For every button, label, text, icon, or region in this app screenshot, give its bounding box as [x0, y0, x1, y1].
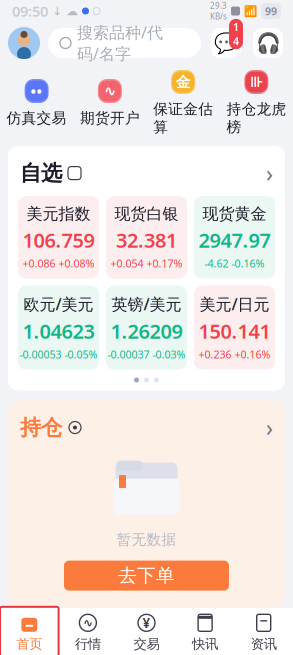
button[interactable]: 编辑自选 — [68, 167, 81, 180]
staticText: 29.3 KB/s — [210, 0, 227, 22]
button[interactable]: 客服 — [251, 26, 285, 60]
button[interactable]: 查看持仓详情 — [266, 412, 273, 443]
staticText: •• — [31, 81, 43, 101]
button[interactable]: 更多自选 — [266, 158, 273, 188]
staticText: ¥ — [142, 614, 150, 632]
staticText: 快讯 — [192, 636, 218, 652]
button[interactable]: 消息 — [209, 26, 243, 60]
staticText: 行情 — [75, 636, 101, 652]
button[interactable]: 去下单 — [64, 561, 229, 591]
staticText: 现货白银 — [114, 204, 178, 224]
button[interactable]: ⊪ — [220, 68, 293, 136]
staticText: 💬 — [213, 32, 238, 54]
staticText: +0.17% — [146, 256, 182, 270]
staticText: 150.141 — [198, 318, 270, 344]
button[interactable]: 快讯 — [176, 607, 234, 655]
staticText: 1.26209 — [110, 318, 182, 344]
button[interactable]: 现货黄金 — [194, 196, 275, 278]
staticText: ∿ — [83, 616, 93, 630]
button[interactable]: 查看持仓多空比 — [266, 629, 273, 655]
button[interactable]: 美元/日元 — [194, 285, 275, 369]
staticText: 持仓多空比 — [20, 632, 120, 655]
staticText: 保证金估算 — [153, 100, 213, 136]
staticText: ∿ — [104, 83, 116, 99]
staticText: ⊪ — [250, 74, 263, 90]
staticText: -4.62 — [204, 256, 228, 270]
staticText: -0.05% — [64, 347, 97, 361]
staticText: 去下单 — [118, 564, 175, 587]
button[interactable]: ¥ — [117, 607, 176, 655]
staticText: 交易 — [133, 636, 159, 652]
staticText: 暂无数据 — [116, 531, 176, 549]
staticText: 英镑/美元 — [111, 293, 181, 315]
staticText: 2947.97 — [198, 227, 270, 253]
button[interactable]: 欧元/美元 — [18, 285, 99, 369]
staticText: 📶 — [244, 5, 257, 17]
staticText: 持仓 — [20, 414, 62, 441]
staticText: -0.16% — [231, 256, 264, 270]
staticText: 14 — [233, 20, 239, 48]
staticText: ↓ — [52, 4, 62, 18]
button[interactable]: 个人中心 — [8, 27, 40, 59]
button[interactable]: 显示或隐藏持仓金额 — [68, 420, 82, 434]
staticText: 欧元/美元 — [23, 293, 93, 315]
button[interactable]: ∿ — [73, 77, 146, 127]
staticText: 仿真交易 — [7, 109, 67, 127]
staticText: 自选 — [20, 160, 62, 186]
staticText: › — [266, 412, 273, 443]
staticText: 1.04623 — [22, 318, 94, 344]
button[interactable]: 现货白银 — [106, 196, 187, 278]
staticText: +0.16% — [234, 347, 270, 361]
staticText: +0.086 — [22, 256, 55, 270]
staticText: 金 — [176, 73, 191, 91]
staticText: +0.054 — [110, 256, 143, 270]
staticText: -0.00037 — [107, 347, 149, 361]
staticText: -0.03% — [152, 347, 185, 361]
staticText: 更新时间：2025-02-24 — [126, 629, 190, 655]
staticText: 美元指数 — [26, 204, 90, 224]
button[interactable]: ∿ — [59, 607, 117, 655]
button[interactable]: 首页 — [0, 607, 59, 655]
staticText: ☁ — [66, 4, 78, 18]
staticText: 99 — [265, 4, 277, 18]
staticText: 首页 — [16, 636, 42, 652]
staticText: 持仓龙虎榜 — [226, 100, 286, 136]
staticText: 现货黄金 — [202, 204, 266, 224]
staticText: 搜索品种/代码/名字 — [77, 22, 163, 64]
staticText: -0.00053 — [19, 347, 61, 361]
staticText: 09:50 — [12, 1, 48, 21]
staticText: 美元/日元 — [199, 293, 269, 315]
button[interactable]: •• — [0, 77, 73, 127]
staticText: 32.381 — [116, 227, 177, 253]
button[interactable]: 资讯 — [234, 607, 293, 655]
button[interactable]: 金 — [146, 68, 220, 136]
staticText: +0.236 — [198, 347, 231, 361]
staticText: 🎧 — [255, 32, 280, 54]
staticText: 106.759 — [22, 227, 94, 253]
staticText: › — [266, 158, 273, 188]
staticText: › — [266, 629, 273, 655]
staticText: 期货开户 — [80, 109, 140, 127]
staticText: 资讯 — [251, 636, 277, 652]
button[interactable]: 搜索品种/代码/名字 — [48, 28, 201, 58]
staticText: +0.08% — [58, 256, 94, 270]
button[interactable]: 英镑/美元 — [106, 285, 187, 369]
button[interactable]: 美元指数 — [18, 196, 99, 278]
